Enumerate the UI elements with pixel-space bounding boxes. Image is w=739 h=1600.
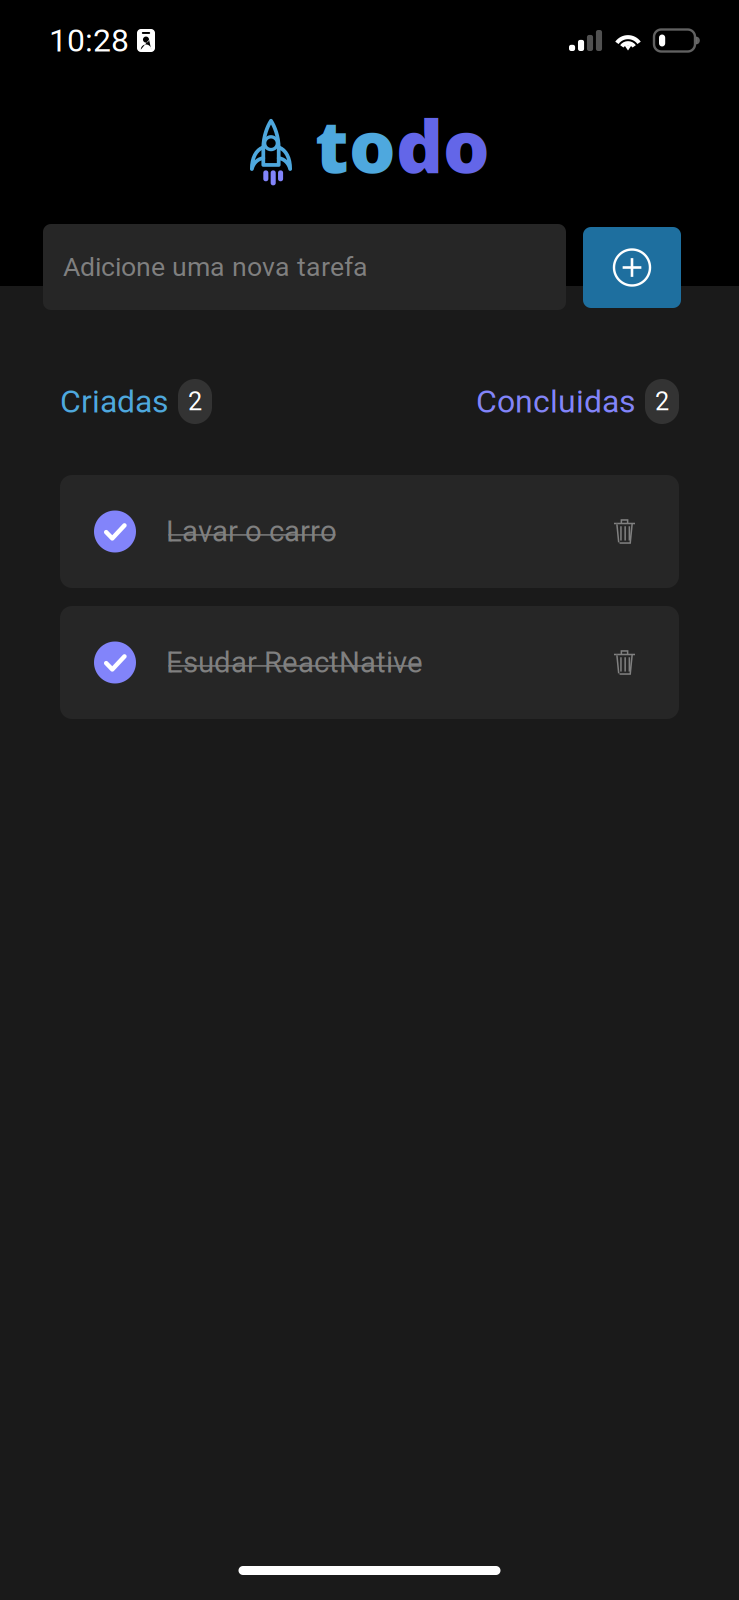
button[interactable]: Remover tarefa	[598, 494, 651, 569]
staticText: 2	[655, 387, 669, 416]
staticText: Esudar ReactNative	[166, 645, 423, 680]
button[interactable]: Remover tarefa	[598, 625, 651, 700]
staticText: Criadas	[60, 383, 169, 420]
staticText: Adicione uma nova tarefa	[63, 251, 368, 283]
staticText: 10:28	[49, 22, 129, 59]
button[interactable]: Adicione uma nova tarefa	[43, 224, 566, 310]
button[interactable]: Adicionar tarefa	[583, 227, 681, 308]
button[interactable]: Desmarcar tarefa	[86, 494, 144, 568]
button[interactable]: Lavar o carro	[60, 475, 679, 588]
staticText: Lavar o carro	[166, 514, 337, 549]
button[interactable]: Esudar ReactNative	[60, 606, 679, 719]
staticText: do	[396, 96, 490, 193]
staticText: to	[315, 96, 396, 193]
button[interactable]: Desmarcar tarefa	[86, 625, 144, 699]
staticText: 2	[188, 387, 202, 416]
button[interactable]: Concluidas	[476, 379, 679, 424]
staticText: Concluidas	[476, 383, 636, 420]
button[interactable]: Criadas	[60, 379, 212, 424]
